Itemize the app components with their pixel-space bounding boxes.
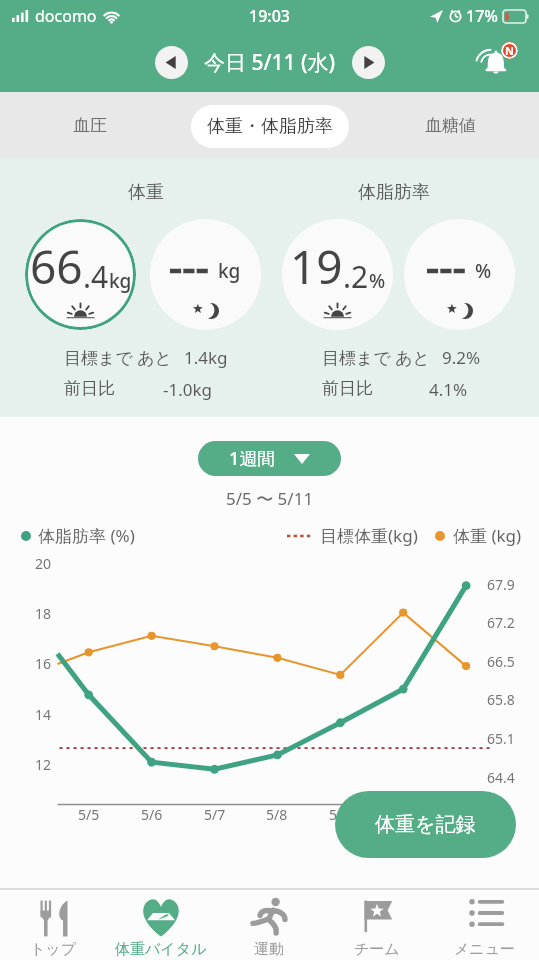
staticText: メニュー xyxy=(454,940,516,959)
button[interactable]: % xyxy=(404,219,515,330)
button[interactable]: チーム xyxy=(323,890,431,960)
staticText: 前日比 xyxy=(64,378,115,399)
staticText: .2 xyxy=(343,256,369,297)
staticText: 目標まで あと xyxy=(322,346,431,369)
staticText: 16 xyxy=(35,654,52,673)
staticText: 67.2 xyxy=(487,613,515,632)
staticText: % xyxy=(369,268,386,294)
staticText: 66.5 xyxy=(487,652,515,671)
staticText: 体重を記録 xyxy=(375,812,476,837)
staticText: 9.2% xyxy=(442,346,481,369)
staticText: 5/6 xyxy=(141,805,163,824)
button[interactable]: 血圧 xyxy=(40,92,140,158)
button[interactable]: Notifications xyxy=(471,38,519,86)
staticText: 19:03 xyxy=(249,5,290,27)
staticText: 4.1% xyxy=(429,378,468,401)
staticText: 目標体重(kg) xyxy=(320,524,418,547)
staticText: 血圧 xyxy=(73,115,107,136)
button[interactable]: 体重を記録 xyxy=(335,791,516,858)
button[interactable]: 運動 xyxy=(215,890,323,960)
staticText: 66 xyxy=(30,235,83,298)
staticText: 血糖値 xyxy=(425,115,476,136)
staticText: 体重 (kg) xyxy=(453,524,522,547)
staticText: 運動 xyxy=(254,940,284,959)
staticText: 14 xyxy=(35,705,52,724)
staticText: % xyxy=(475,258,492,284)
staticText: 20 xyxy=(35,554,52,573)
staticText: 5/5 〜 5/11 xyxy=(226,487,314,510)
staticText: 5/8 xyxy=(266,805,288,824)
button[interactable]: kg xyxy=(150,219,261,330)
button[interactable]: 血糖値 xyxy=(400,92,500,158)
staticText: kg xyxy=(109,268,132,294)
staticText: 体重バイタル xyxy=(115,940,207,959)
staticText: トップ xyxy=(30,940,77,959)
staticText: 12 xyxy=(35,755,52,774)
staticText: 体重・体脂肪率 xyxy=(207,115,333,138)
staticText: 67.9 xyxy=(487,575,515,594)
staticText: 18 xyxy=(35,604,52,623)
staticText: 1週間 xyxy=(229,446,276,471)
staticText: -1.0kg xyxy=(163,378,213,401)
staticText: docomo xyxy=(35,5,97,27)
button[interactable]: Next day xyxy=(352,46,385,79)
staticText: N xyxy=(505,43,514,58)
staticText: 17% xyxy=(466,5,498,27)
staticText: 5/7 xyxy=(204,805,226,824)
button[interactable]: トップ xyxy=(0,890,107,960)
staticText: 目標まで あと xyxy=(64,346,173,369)
staticText: 5/9 xyxy=(329,805,351,824)
button[interactable]: 66 xyxy=(25,219,136,330)
staticText: 体脂肪率 xyxy=(358,181,430,204)
staticText: 19 xyxy=(290,235,343,298)
button[interactable]: Previous day xyxy=(155,46,188,79)
staticText: 体重 xyxy=(128,181,164,204)
staticText: 5/11 xyxy=(451,805,481,824)
staticText: 1.4kg xyxy=(184,346,228,369)
staticText: 今日 5/11 (水) xyxy=(204,48,336,77)
button[interactable]: 体重・体脂肪率 xyxy=(191,105,349,148)
button[interactable]: 1週間 xyxy=(198,441,341,476)
staticText: .4 xyxy=(83,256,109,297)
staticText: チーム xyxy=(354,940,400,959)
staticText: 前日比 xyxy=(322,378,373,399)
staticText: kg xyxy=(218,258,241,284)
button[interactable]: 19 xyxy=(282,219,393,330)
staticText: 65.8 xyxy=(487,690,515,709)
staticText: 64.4 xyxy=(487,768,515,787)
staticText: 5/5 xyxy=(78,805,100,824)
staticText: 5/10 xyxy=(388,805,418,824)
staticText: 体脂肪率 (%) xyxy=(38,524,135,547)
button[interactable]: メニュー xyxy=(431,890,539,960)
button[interactable]: 体重バイタル xyxy=(107,890,215,960)
staticText: 65.1 xyxy=(487,729,515,748)
